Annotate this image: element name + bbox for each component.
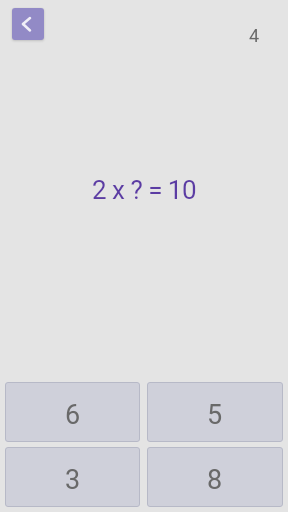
staticText: 2 x ? = 10 [92,175,197,205]
button[interactable]: 5 [147,382,283,442]
staticText: 8 [207,464,223,496]
staticText: 4 [249,25,260,46]
staticText: 3 [65,464,81,496]
button[interactable]: Back [12,8,44,40]
staticText: 6 [65,399,81,431]
button[interactable]: 8 [147,447,283,507]
button[interactable]: 3 [5,447,140,507]
button[interactable]: 6 [5,382,140,442]
staticText: 5 [207,399,223,431]
